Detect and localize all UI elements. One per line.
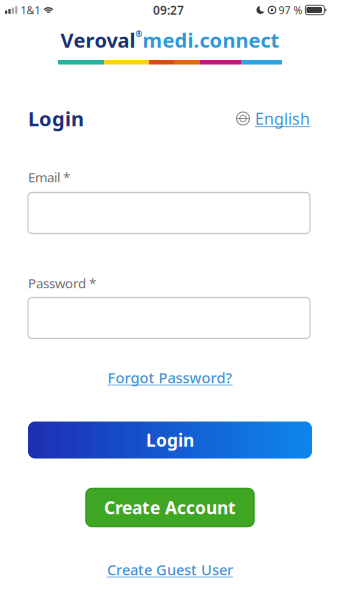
staticText: Password * xyxy=(28,274,96,292)
staticText: Veroval xyxy=(60,27,135,53)
staticText: Create Guest User xyxy=(107,560,233,579)
button[interactable]: English xyxy=(236,108,310,129)
staticText: medi.connect xyxy=(142,27,279,53)
button[interactable]: Create Guest User xyxy=(107,561,233,577)
staticText: ® xyxy=(135,29,142,39)
staticText: Login xyxy=(146,428,194,451)
staticText: Create Account xyxy=(104,496,236,519)
staticText: English xyxy=(255,108,310,129)
button[interactable]: Create Account xyxy=(86,488,254,526)
staticText: 09:27 xyxy=(153,2,184,18)
button[interactable] xyxy=(28,192,310,233)
staticText: Login xyxy=(28,105,84,132)
staticText: 97 % xyxy=(278,3,302,17)
button[interactable]: Login xyxy=(28,421,312,458)
staticText: 1&1 xyxy=(20,3,40,17)
staticText: Forgot Password? xyxy=(107,368,232,387)
button[interactable]: Forgot Password? xyxy=(107,369,232,385)
staticText: Email * xyxy=(28,168,70,186)
button[interactable] xyxy=(28,297,310,338)
